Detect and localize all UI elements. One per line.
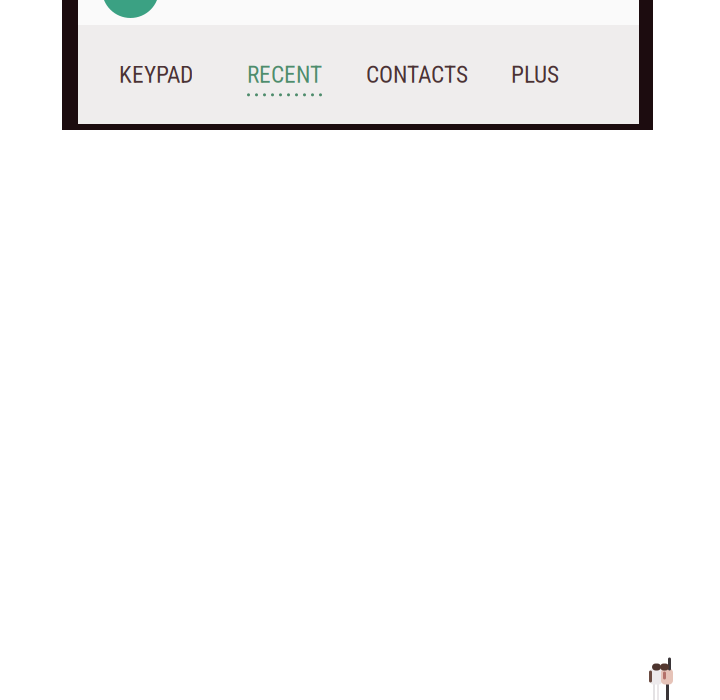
button[interactable]: CONTACTS bbox=[366, 61, 468, 88]
staticText: KEYPAD bbox=[119, 61, 193, 88]
staticText: CONTACTS bbox=[366, 61, 468, 88]
staticText: RECENT bbox=[247, 61, 322, 88]
button[interactable]: PLUS bbox=[511, 61, 559, 88]
button[interactable]: KEYPAD bbox=[119, 61, 193, 88]
staticText: PLUS bbox=[511, 61, 559, 88]
button[interactable]: RECENT bbox=[247, 61, 322, 96]
